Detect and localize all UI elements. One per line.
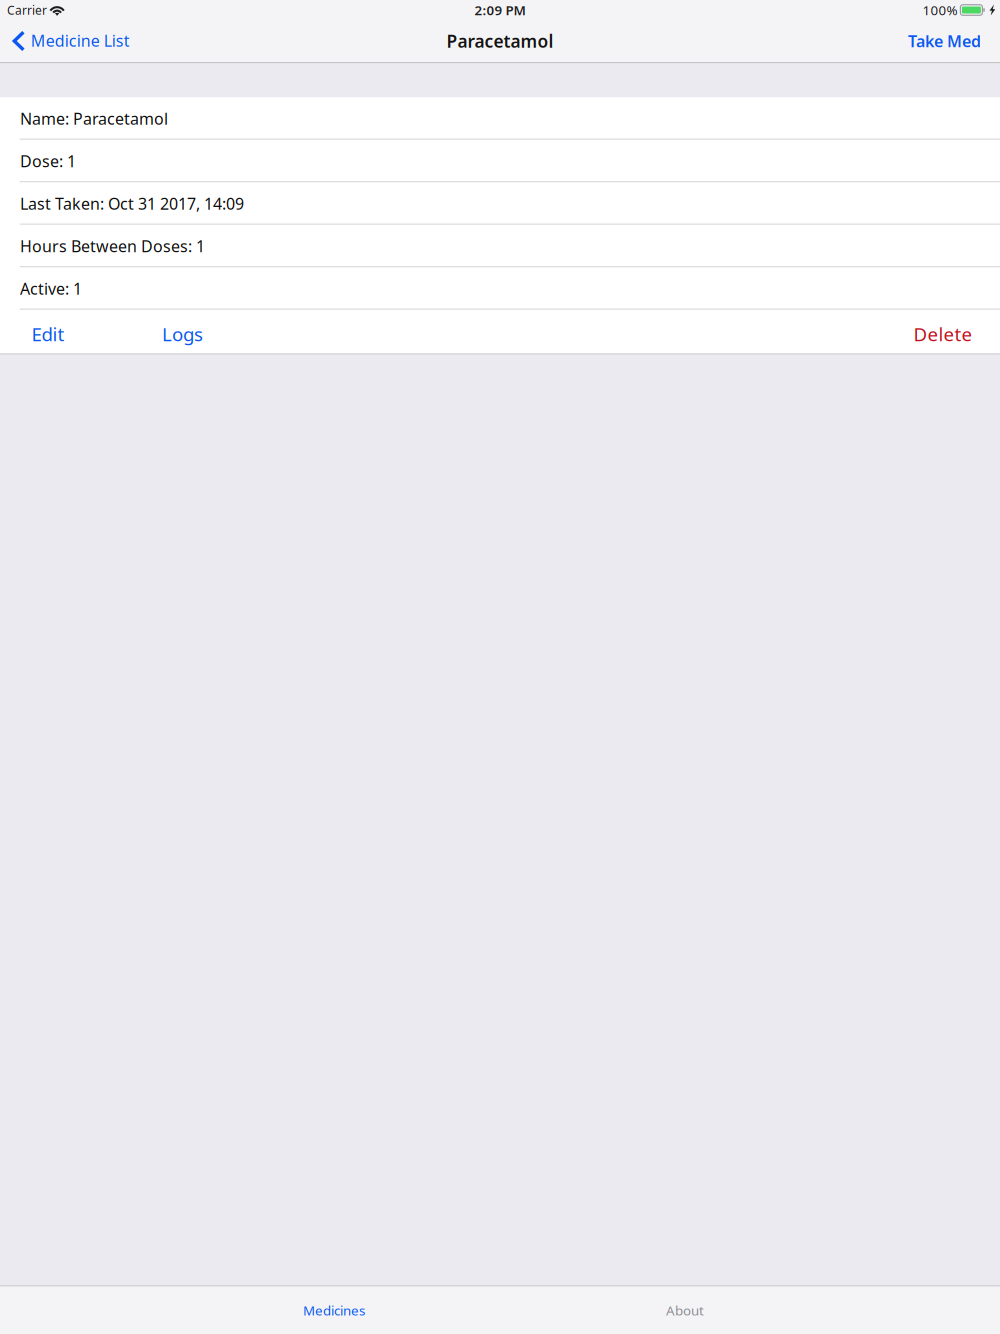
- button[interactable]: Medicines: [234, 1286, 434, 1334]
- button[interactable]: Delete: [886, 310, 1000, 353]
- staticText: Logs: [162, 322, 203, 346]
- staticText: Medicine List: [31, 30, 130, 51]
- staticText: About: [666, 1301, 704, 1319]
- staticText: Last Taken: Oct 31 2017, 14:09: [20, 193, 244, 214]
- staticText: Edit: [31, 322, 64, 346]
- button[interactable]: About: [585, 1286, 785, 1334]
- button[interactable]: Logs: [84, 310, 281, 353]
- staticText: Carrier: [7, 2, 47, 18]
- button[interactable]: Edit: [12, 310, 84, 353]
- staticText: 100%: [922, 1, 957, 19]
- button[interactable]: Take Med: [893, 20, 1000, 62]
- staticText: Medicines: [303, 1301, 365, 1319]
- staticText: Hours Between Doses: 1: [20, 235, 205, 257]
- button[interactable]: Medicine List: [0, 20, 140, 62]
- staticText: Active: 1: [20, 278, 82, 299]
- staticText: 2:09 PM: [474, 1, 525, 19]
- staticText: Dose: 1: [20, 150, 76, 172]
- staticText: Name: Paracetamol: [20, 108, 168, 129]
- staticText: Delete: [913, 322, 972, 346]
- staticText: Paracetamol: [446, 29, 553, 52]
- staticText: Take Med: [908, 30, 981, 52]
